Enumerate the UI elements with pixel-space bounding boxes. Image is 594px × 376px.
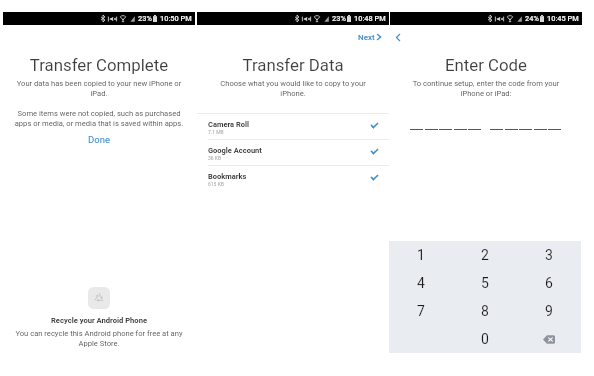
staticText: Recycle your Android Phone [3, 316, 195, 325]
button[interactable]: 9 [517, 297, 581, 325]
button[interactable]: Done [75, 133, 123, 146]
staticText: 24% [525, 14, 539, 23]
staticText: Some items were not copied, such as purc… [14, 109, 184, 128]
staticText: 615 KB [208, 181, 224, 187]
staticText: Done [88, 134, 110, 145]
staticText: 9 [545, 303, 553, 319]
staticText: Google Account [208, 146, 262, 155]
staticText: Enter Code [390, 55, 582, 75]
staticText: Next [358, 33, 375, 42]
staticText: 10:50 PM [160, 14, 192, 23]
button[interactable]: Camera Roll [197, 114, 389, 140]
button[interactable]: Delete [517, 325, 581, 353]
staticText: 10:45 PM [547, 14, 579, 23]
button[interactable]: 1 [389, 241, 453, 269]
staticText: 10:48 PM [354, 14, 386, 23]
staticText: 6 [545, 275, 553, 291]
staticText: 5 [481, 275, 489, 291]
button[interactable]: 4 [389, 269, 453, 297]
staticText: 23% [138, 14, 152, 23]
button[interactable]: 6 [517, 269, 581, 297]
staticText: 4 [417, 275, 425, 291]
staticText: You can recycle this Android phone for f… [11, 329, 187, 348]
button[interactable]: 8 [453, 297, 517, 325]
button[interactable]: 0 [453, 325, 517, 353]
staticText: Transfer Complete [3, 55, 195, 75]
staticText: 0 [481, 331, 489, 347]
staticText: 7 [417, 303, 425, 319]
staticText: Your data has been copied to your new iP… [15, 79, 183, 97]
button[interactable]: 3 [517, 241, 581, 269]
staticText: 36 KB [208, 155, 222, 161]
staticText: Choose what you would like to copy to yo… [217, 79, 369, 97]
staticText: 23% [332, 14, 346, 23]
button[interactable]: 2 [453, 241, 517, 269]
button[interactable]: Bookmarks [197, 166, 389, 192]
button[interactable]: 5 [453, 269, 517, 297]
staticText: Camera Roll [208, 120, 250, 129]
staticText: 1 [417, 247, 425, 263]
button[interactable]: Back [392, 31, 404, 43]
staticText: To continue setup, enter the code from y… [410, 79, 562, 97]
button[interactable]: 7 [389, 297, 453, 325]
staticText: 8 [481, 303, 489, 319]
button[interactable]: Next [354, 30, 383, 44]
staticText: 3 [545, 247, 553, 263]
staticText: Transfer Data [197, 55, 389, 75]
staticText: 7.1 MB [208, 129, 224, 135]
staticText: 2 [481, 247, 489, 263]
staticText: Bookmarks [208, 172, 247, 181]
button[interactable]: Google Account [197, 140, 389, 166]
